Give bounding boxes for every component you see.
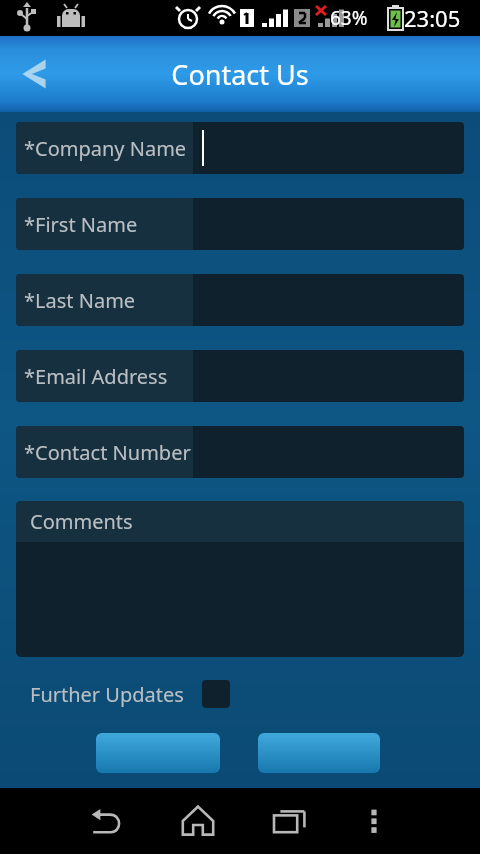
staticText: Contact Us [171, 56, 309, 93]
button[interactable]: Back [8, 46, 64, 102]
staticText: *First Name [24, 211, 138, 238]
button[interactable]: *Company Name [16, 122, 464, 174]
button[interactable]: Recents [260, 791, 320, 851]
button[interactable]: *First Name [16, 198, 464, 250]
button[interactable]: *Email Address [16, 350, 464, 402]
staticText: Further Updates [30, 681, 184, 708]
button[interactable]: *Last Name [16, 274, 464, 326]
button[interactable]: Home [168, 791, 228, 851]
staticText: *Company Name [24, 135, 187, 162]
button[interactable] [258, 733, 380, 773]
button[interactable]: Back [76, 791, 136, 851]
staticText: *Last Name [24, 287, 136, 314]
button[interactable] [96, 733, 220, 773]
button[interactable]: Further Updates [30, 677, 230, 711]
staticText: Comments [30, 508, 133, 535]
button[interactable]: More options [344, 791, 404, 851]
staticText: *Contact Number [24, 439, 191, 466]
staticText: *Email Address [24, 363, 168, 390]
button[interactable]: Comments [16, 501, 464, 657]
button[interactable]: *Contact Number [16, 426, 464, 478]
staticText: 63% [330, 5, 368, 31]
staticText: 23:05 [404, 3, 461, 33]
